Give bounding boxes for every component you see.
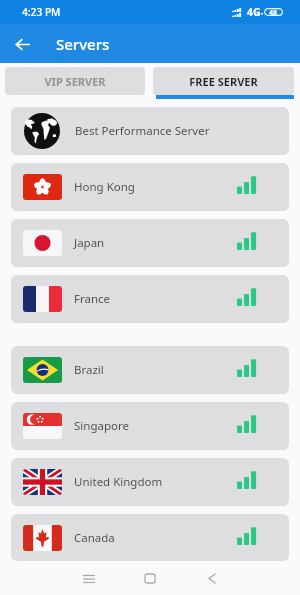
button[interactable]: Hong Kong xyxy=(11,163,289,211)
staticText: 4G xyxy=(247,5,261,19)
staticText: Canada xyxy=(74,530,115,546)
staticText: France xyxy=(74,291,111,307)
button[interactable]: Home xyxy=(130,563,170,593)
staticText: Singapore xyxy=(74,418,129,434)
staticText: Japan xyxy=(74,235,105,251)
staticText: Brazil xyxy=(74,362,104,378)
staticText: FREE SERVER xyxy=(189,74,258,89)
button[interactable]: VIP SERVER xyxy=(5,67,145,95)
button[interactable]: Recent apps xyxy=(69,563,109,593)
staticText: Best Performance Server xyxy=(75,123,210,139)
button[interactable]: FREE SERVER xyxy=(153,67,294,99)
staticText: United Kingdom xyxy=(74,474,163,490)
staticText: Hong Kong xyxy=(74,179,135,195)
button[interactable]: Back xyxy=(8,30,36,58)
staticText: Servers xyxy=(56,34,110,54)
staticText: VIP SERVER xyxy=(44,74,106,89)
button[interactable]: Japan xyxy=(11,219,289,267)
staticText: 48 xyxy=(269,8,278,16)
button[interactable]: France xyxy=(11,275,289,323)
button[interactable]: United Kingdom xyxy=(11,458,289,506)
button[interactable]: Back xyxy=(192,563,232,593)
staticText: 4:23 PM xyxy=(22,5,61,19)
button[interactable]: Canada xyxy=(11,514,289,561)
button[interactable]: Brazil xyxy=(11,346,289,394)
button[interactable]: Singapore xyxy=(11,402,289,450)
button[interactable]: Best Performance Server xyxy=(11,107,289,155)
